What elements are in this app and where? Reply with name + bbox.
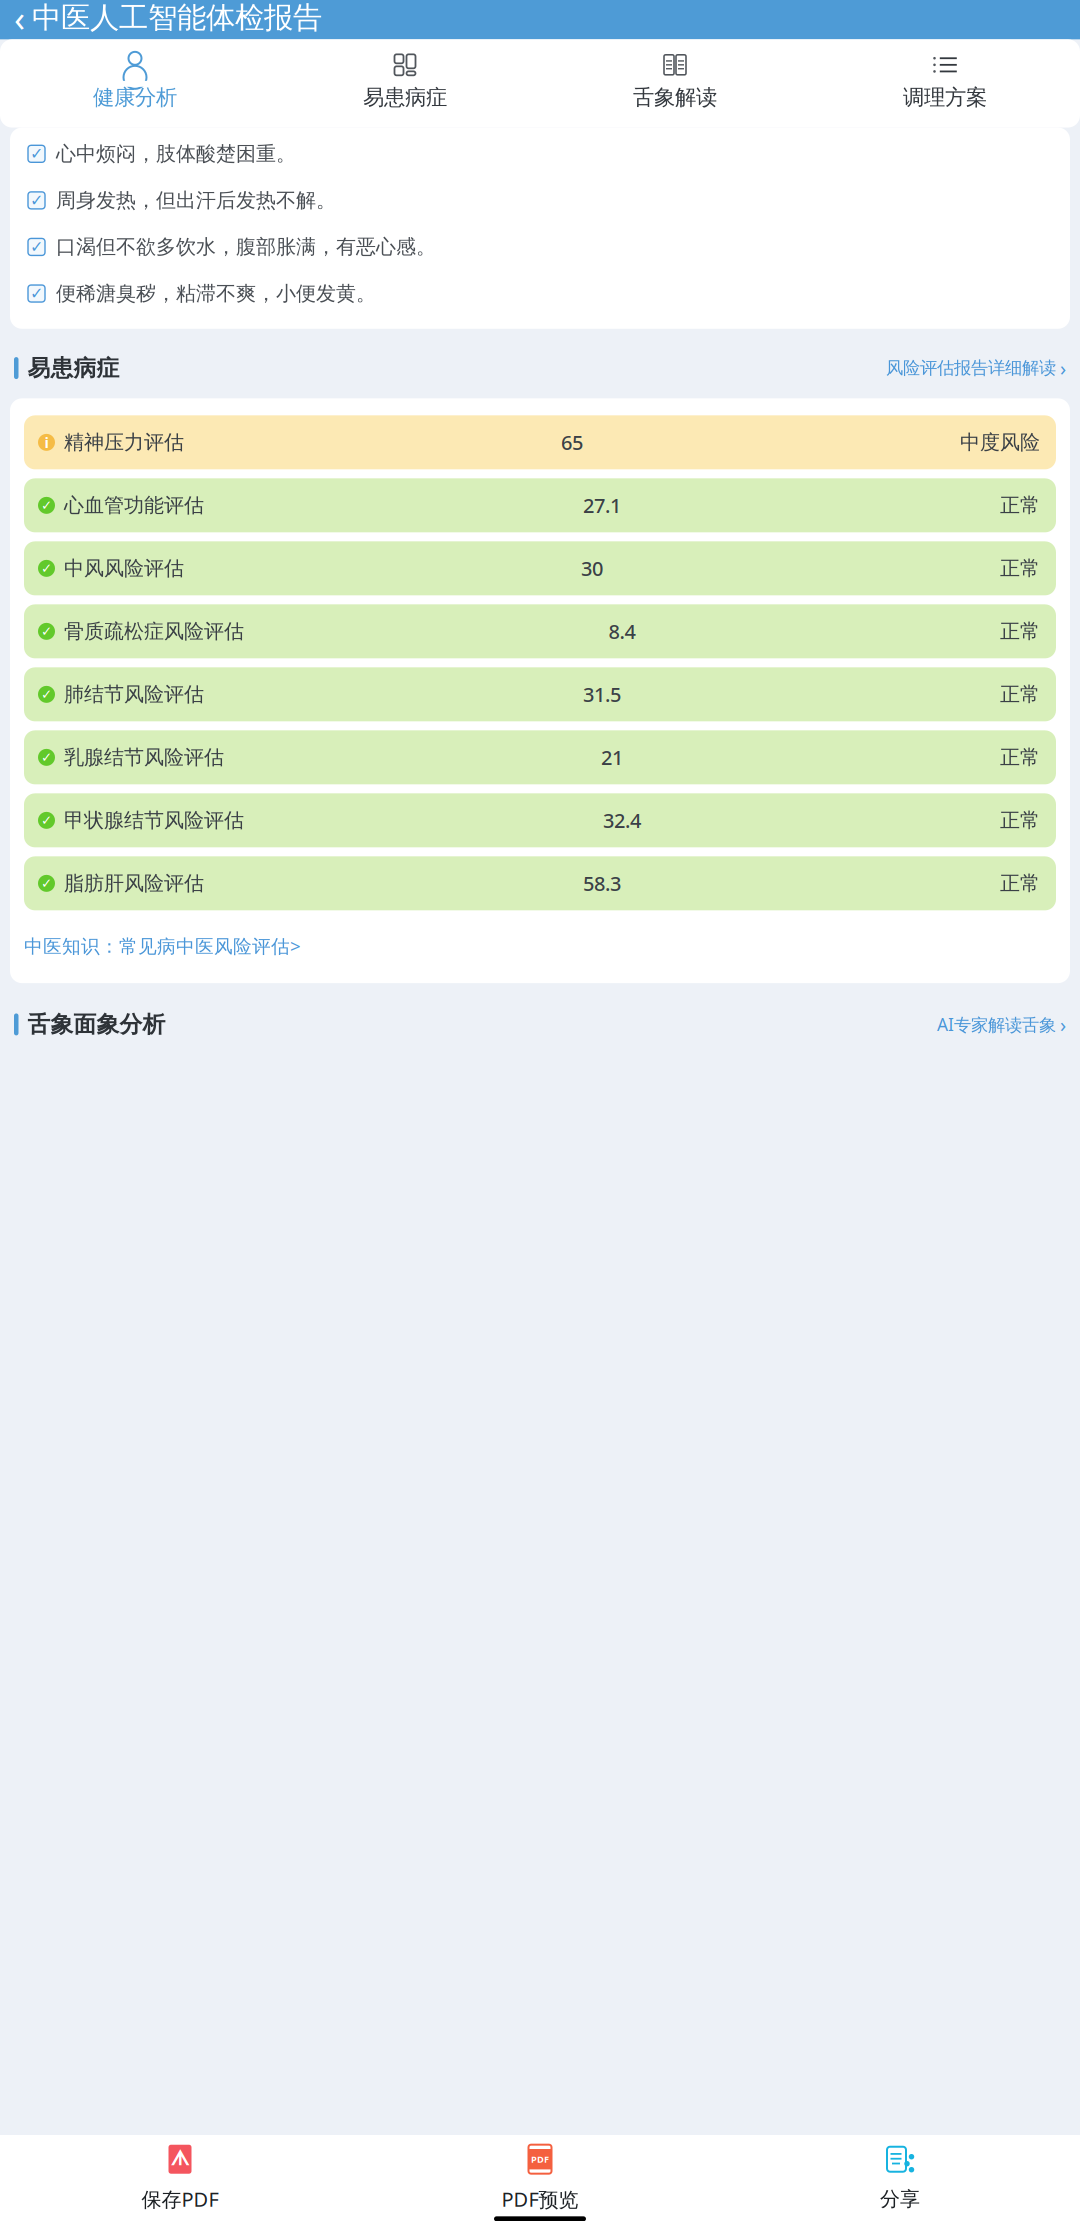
staticText: 舌象解读 bbox=[633, 84, 717, 110]
button[interactable]: ✓ bbox=[24, 667, 1056, 721]
staticText: ᗑ bbox=[170, 2149, 189, 2169]
staticText: 保存PDF bbox=[141, 2186, 218, 2212]
staticText: ✓ bbox=[30, 145, 43, 163]
button[interactable]: ✓ bbox=[24, 793, 1056, 847]
button[interactable]: 风险评估报告详细解读 bbox=[886, 351, 1066, 385]
staticText: i bbox=[44, 433, 48, 452]
button[interactable]: ✓ bbox=[24, 604, 1056, 658]
button[interactable]: 易患病症 bbox=[270, 43, 540, 118]
staticText: ✓ bbox=[41, 750, 52, 765]
staticText: 正常 bbox=[1000, 808, 1040, 833]
staticText: 8.4 bbox=[608, 618, 635, 645]
staticText: ✓ bbox=[41, 498, 52, 513]
staticText: 正常 bbox=[1000, 745, 1040, 770]
button[interactable]: 中医知识：常见病中医风险评估> bbox=[24, 930, 301, 961]
staticText: 正常 bbox=[1000, 619, 1040, 644]
staticText: 中度风险 bbox=[960, 430, 1040, 455]
staticText: ✓ bbox=[41, 687, 52, 702]
staticText: 正常 bbox=[1000, 682, 1040, 707]
button[interactable]: ✓ bbox=[24, 541, 1056, 595]
button[interactable]: ᗑ bbox=[0, 2140, 360, 2216]
staticText: 27.1 bbox=[583, 492, 621, 519]
button[interactable]: 调理方案 bbox=[810, 43, 1080, 118]
button[interactable]: PDF bbox=[360, 2140, 720, 2216]
staticText: 肺结节风险评估 bbox=[64, 682, 204, 707]
button[interactable]: ✓ bbox=[24, 478, 1056, 532]
staticText: 口渴但不欲多饮水，腹部胀满，有恶心感。 bbox=[56, 235, 436, 259]
staticText: 风险评估报告详细解读 bbox=[886, 357, 1056, 379]
staticText: PDF bbox=[531, 2153, 549, 2165]
staticText: ✓ bbox=[41, 624, 52, 639]
staticText: 32.4 bbox=[603, 807, 641, 834]
staticText: ✓ bbox=[41, 561, 52, 576]
button[interactable]: AI专家解读舌象 bbox=[937, 1007, 1066, 1042]
staticText: 健康分析 bbox=[93, 84, 177, 110]
staticText: 58.3 bbox=[583, 870, 621, 897]
staticText: ✓ bbox=[30, 238, 43, 256]
staticText: › bbox=[1060, 1011, 1066, 1038]
staticText: 脂肪肝风险评估 bbox=[64, 871, 204, 896]
button[interactable]: 舌象解读 bbox=[540, 43, 810, 118]
staticText: ✓ bbox=[30, 284, 43, 303]
staticText: 中医知识：常见病中医风险评估> bbox=[24, 933, 301, 958]
staticText: 舌象面象分析 bbox=[27, 1010, 165, 1038]
staticText: 易患病症 bbox=[363, 84, 447, 110]
staticText: 心中烦闷，肢体酸楚困重。 bbox=[56, 141, 296, 166]
staticText: 心血管功能评估 bbox=[64, 493, 204, 518]
staticText: 乳腺结节风险评估 bbox=[64, 745, 224, 770]
staticText: 精神压力评估 bbox=[64, 430, 184, 455]
staticText: 65 bbox=[561, 429, 583, 456]
staticText: 正常 bbox=[1000, 493, 1040, 518]
button[interactable]: ✓ bbox=[24, 730, 1056, 784]
staticText: 骨质疏松症风险评估 bbox=[64, 619, 244, 644]
staticText: 分享 bbox=[880, 2187, 920, 2211]
staticText: AI专家解读舌象 bbox=[937, 1013, 1056, 1036]
staticText: PDF预览 bbox=[501, 2186, 578, 2212]
button[interactable]: ✓ bbox=[24, 856, 1056, 910]
staticText: ✓ bbox=[30, 191, 43, 209]
staticText: 中医人工智能体检报告 bbox=[32, 0, 322, 36]
staticText: 31.5 bbox=[583, 681, 621, 708]
staticText: 正常 bbox=[1000, 871, 1040, 896]
staticText: 便稀溏臭秽，粘滞不爽，小便发黄。 bbox=[56, 281, 376, 306]
button[interactable]: i bbox=[24, 415, 1056, 469]
staticText: 21 bbox=[601, 744, 623, 771]
staticText: › bbox=[1060, 355, 1066, 381]
button[interactable]: 分享 bbox=[720, 2141, 1080, 2215]
staticText: 甲状腺结节风险评估 bbox=[64, 808, 244, 833]
button[interactable]: 健康分析 bbox=[0, 43, 270, 118]
staticText: ✓ bbox=[41, 813, 52, 828]
staticText: ✓ bbox=[41, 876, 52, 891]
staticText: 易患病症 bbox=[27, 354, 119, 382]
button[interactable]: 返回 bbox=[0, 0, 322, 46]
staticText: 周身发热，但出汗后发热不解。 bbox=[56, 188, 336, 213]
staticText: 调理方案 bbox=[903, 84, 987, 110]
staticText: ‹ bbox=[14, 0, 25, 42]
staticText: 正常 bbox=[1000, 556, 1040, 581]
staticText: 30 bbox=[581, 555, 603, 582]
staticText: 中风风险评估 bbox=[64, 556, 184, 581]
